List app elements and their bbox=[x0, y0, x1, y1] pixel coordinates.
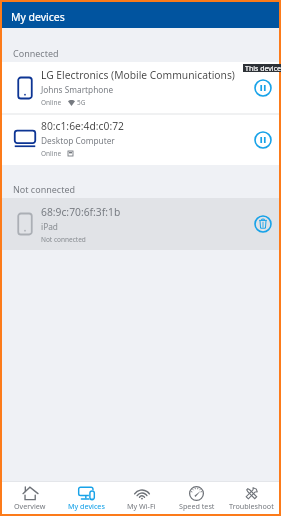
staticText: LG Electronics (Mobile Communications) bbox=[41, 68, 235, 82]
staticText: Connected bbox=[13, 47, 59, 59]
button[interactable]: 80:c1:6e:4d:c0:72 bbox=[2, 115, 279, 165]
staticText: 80:c1:6e:4d:c0:72 bbox=[41, 119, 124, 133]
staticText: iPad bbox=[41, 221, 58, 232]
staticText: My devices bbox=[68, 501, 105, 511]
staticText: Troubleshoot bbox=[229, 501, 274, 511]
staticText: Speed test bbox=[179, 501, 215, 511]
button[interactable]: Speed test bbox=[169, 482, 224, 514]
button[interactable]: Troubleshoot bbox=[224, 482, 279, 514]
staticText: This device bbox=[245, 64, 281, 72]
staticText: My devices bbox=[11, 10, 65, 24]
button[interactable]: My Wi-Fi bbox=[114, 482, 169, 514]
button[interactable]: Remove device bbox=[252, 213, 274, 235]
staticText: My Wi-Fi bbox=[127, 501, 156, 511]
button[interactable]: 68:9c:70:6f:3f:1b bbox=[2, 198, 279, 250]
staticText: Online bbox=[41, 149, 62, 158]
staticText: Not connected bbox=[13, 183, 76, 195]
staticText: Desktop Computer bbox=[41, 135, 115, 146]
button[interactable]: Pause device bbox=[252, 77, 274, 99]
staticText: Overview bbox=[14, 501, 46, 511]
staticText: Not connected bbox=[41, 235, 86, 244]
staticText: 68:9c:70:6f:3f:1b bbox=[41, 205, 121, 219]
staticText: 5G bbox=[77, 98, 86, 107]
staticText: Johns Smartphone bbox=[41, 84, 114, 95]
button[interactable]: Overview bbox=[2, 482, 58, 514]
staticText: Online bbox=[41, 98, 62, 107]
button[interactable]: LG Electronics (Mobile Communications) bbox=[2, 62, 279, 113]
button[interactable]: Pause device bbox=[252, 129, 274, 151]
button[interactable]: My devices bbox=[58, 482, 114, 514]
